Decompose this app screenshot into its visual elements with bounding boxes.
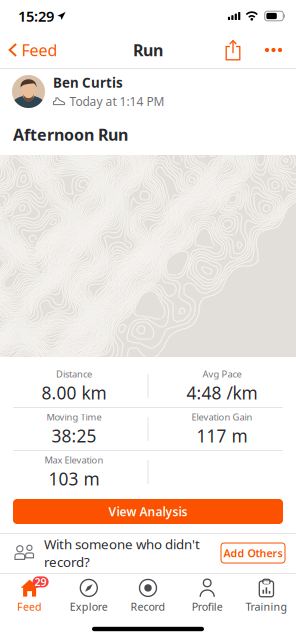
staticText: Max Elevation [44,454,103,466]
button[interactable]: Profile [178,574,237,618]
button[interactable]: Training [237,574,296,618]
staticText: Ben Curtis [53,74,123,91]
staticText: 38:25 [51,424,96,447]
button[interactable]: View Analysis [13,499,283,524]
staticText: Add Others [223,546,282,560]
staticText: With someone who didn't record? [44,535,200,571]
staticText: 117 m [196,424,247,447]
staticText: Run [133,39,163,61]
staticText: Profile [192,599,223,614]
staticText: 8.00 km [41,381,106,404]
button[interactable]: Add Others [221,543,285,563]
staticText: Distance [56,368,92,380]
button[interactable]: Share [216,32,250,68]
staticText: 103 m [48,467,99,490]
staticText: Today at 1:14 PM [69,93,164,109]
button[interactable]: More options [258,32,289,68]
staticText: Feed [21,39,57,61]
button[interactable]: 29 [0,574,59,618]
staticText: Feed [17,599,42,614]
staticText: Moving Time [46,411,101,423]
staticText: Record [130,599,165,614]
staticText: Explore [70,599,108,614]
button[interactable]: Explore [59,574,118,618]
staticText: View Analysis [108,503,187,519]
staticText: 15:29 [18,6,54,26]
button[interactable]: Record [118,574,178,618]
staticText: Training [245,599,287,614]
staticText: Elevation Gain [191,411,252,423]
staticText: Afternoon Run [13,124,128,145]
staticText: 4:48 /km [186,381,257,404]
button[interactable]: Feed [0,32,65,68]
staticText: Avg Pace [202,368,241,380]
staticText: 29 [35,575,47,589]
